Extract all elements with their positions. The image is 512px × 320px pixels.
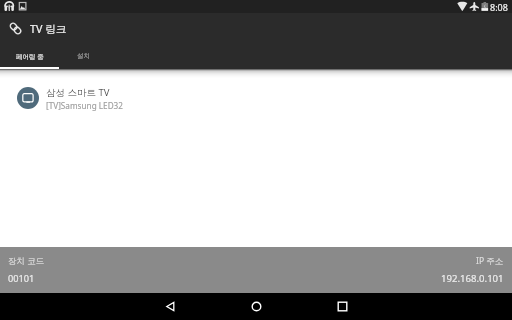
staticText: TV 링크 bbox=[30, 22, 67, 37]
staticText: 00101 bbox=[8, 272, 35, 285]
button[interactable]: Recent apps bbox=[322, 293, 362, 320]
button[interactable]: 설치 bbox=[59, 45, 107, 69]
staticText: 페어링 중 bbox=[16, 52, 44, 61]
staticText: 삼성 스마트 TV bbox=[46, 86, 110, 99]
button[interactable]: 삼성 스마트 TV bbox=[0, 76, 512, 120]
button[interactable]: Back bbox=[150, 293, 190, 320]
button[interactable]: 장치 코드 bbox=[0, 255, 53, 285]
staticText: 8:08 bbox=[490, 1, 508, 13]
button[interactable]: 페어링 중 bbox=[0, 45, 59, 69]
staticText: 설치 bbox=[77, 52, 90, 60]
staticText: [TV]Samsung LED32 bbox=[46, 100, 123, 111]
button[interactable]: Home bbox=[236, 293, 276, 320]
staticText: 192.168.0.101 bbox=[441, 272, 504, 285]
button[interactable]: TV link bbox=[7, 21, 23, 37]
staticText: 장치 코드 bbox=[8, 255, 45, 267]
staticText: IP 주소 bbox=[476, 255, 504, 267]
button[interactable]: IP 주소 bbox=[433, 255, 512, 285]
